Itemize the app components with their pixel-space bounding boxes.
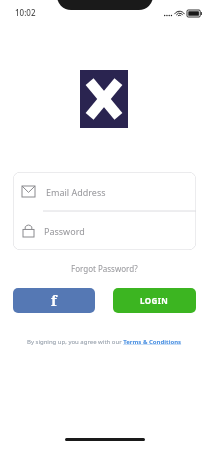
staticText: Email Address bbox=[46, 186, 106, 198]
button[interactable]: Email Address bbox=[13, 172, 196, 211]
button[interactable]: LOGIN bbox=[113, 288, 196, 313]
staticText: Forgot Password? bbox=[71, 263, 138, 274]
button[interactable]: By signing up, you agree with our Terms … bbox=[23, 336, 186, 348]
button[interactable]: Password bbox=[13, 211, 196, 250]
staticText: 10:02 bbox=[15, 7, 36, 18]
staticText: LOGIN bbox=[140, 295, 169, 306]
staticText: f bbox=[51, 291, 57, 310]
staticText: By signing up, you agree with our Terms … bbox=[27, 338, 182, 346]
button[interactable]: Forgot Password? bbox=[67, 261, 142, 276]
button[interactable]: Sign in with Facebook bbox=[13, 288, 95, 313]
staticText: Password bbox=[44, 225, 85, 237]
